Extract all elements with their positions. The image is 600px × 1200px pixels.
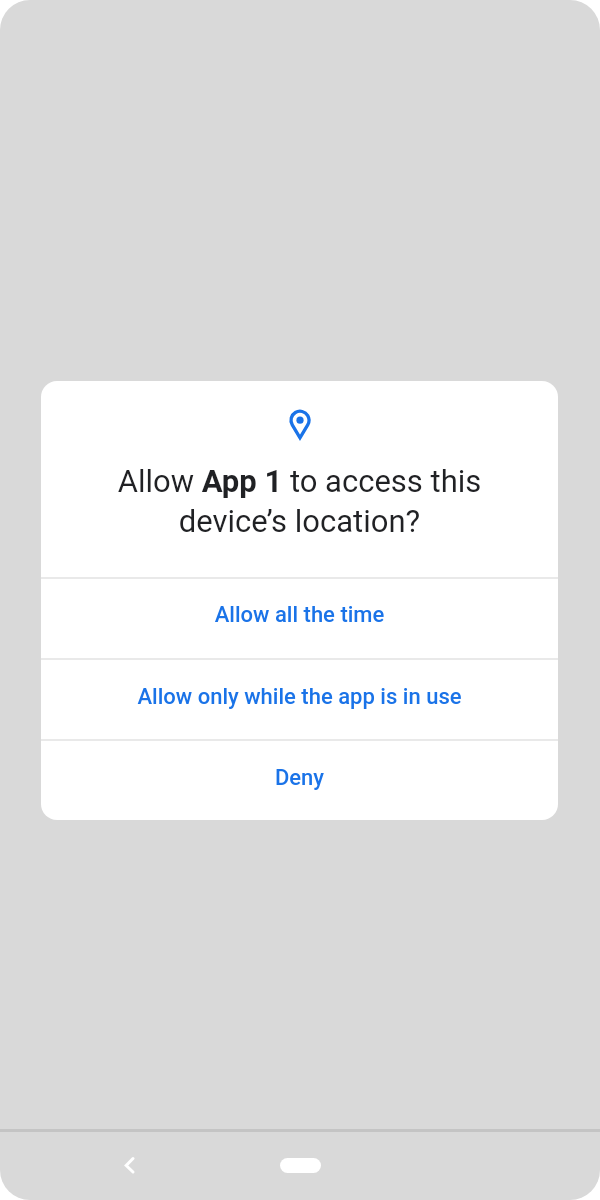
staticText: Allow only while the app is in use	[41, 684, 558, 710]
staticText: Allow all the time	[41, 602, 558, 628]
staticText: Allow App 1 to access this device’s loca…	[41, 463, 558, 540]
staticText: Deny	[41, 765, 558, 791]
